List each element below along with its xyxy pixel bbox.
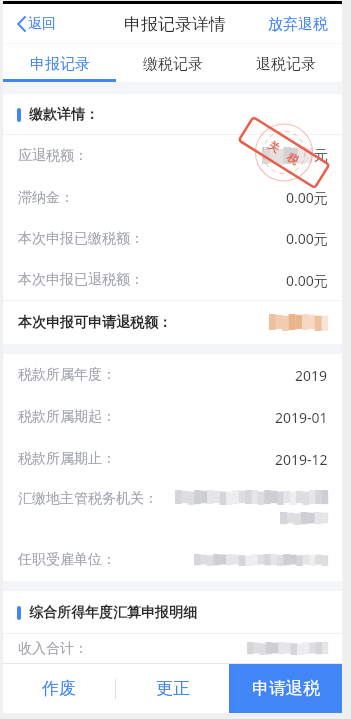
button[interactable]: 作废 (3, 664, 115, 713)
button[interactable]: 放弃退税 (268, 15, 328, 34)
button[interactable]: 汇缴地主管税务机关： (3, 480, 342, 539)
staticText: 作废 (42, 678, 76, 699)
staticText: 汇缴地主管税务机关： (18, 490, 158, 508)
button[interactable]: 收入合计： (3, 634, 342, 663)
button[interactable]: 税款所属期止： (3, 438, 342, 480)
staticText: 申报记录 (30, 55, 90, 74)
staticText: 元 (314, 147, 328, 165)
staticText: 退税记录 (256, 55, 316, 74)
button[interactable]: 本次申报已缴税额： (3, 218, 342, 259)
button[interactable]: 缴税记录 (116, 44, 229, 82)
staticText: 本次申报可申请退税额： (18, 314, 172, 332)
button[interactable]: 税款所属期起： (3, 396, 342, 438)
button[interactable]: 应退税额： (3, 135, 342, 177)
staticText: 2019-12 (275, 450, 328, 469)
staticText: 收入合计： (18, 640, 88, 658)
button[interactable]: 滞纳金： (3, 177, 342, 218)
staticText: 0.00元 (286, 229, 328, 248)
staticText: 任职受雇单位： (18, 551, 116, 569)
staticText: 综合所得年度汇算申报明细 (29, 604, 197, 622)
button[interactable]: 更正 (116, 664, 229, 713)
staticText: 申请退税 (252, 678, 320, 699)
staticText: 2019 (295, 366, 328, 385)
staticText: 0.00元 (286, 271, 328, 290)
staticText: 放弃退税 (268, 15, 328, 34)
staticText: 2019-01 (275, 408, 328, 427)
staticText: 缴款详情： (29, 106, 99, 124)
button[interactable]: 本次申报已退税额： (3, 259, 342, 301)
staticText: 滞纳金： (18, 189, 74, 207)
staticText: 应退税额： (18, 147, 88, 165)
button[interactable]: 申报记录 (3, 44, 116, 82)
staticText: 税款所属年度： (18, 366, 116, 384)
staticText: 缴税记录 (143, 55, 203, 74)
staticText: 税款所属期止： (18, 450, 116, 468)
button[interactable]: 本次申报可申请退税额： (3, 301, 342, 344)
staticText: 0.00元 (286, 188, 328, 207)
staticText: 本次申报已缴税额： (18, 230, 144, 248)
button[interactable]: 退税记录 (229, 44, 342, 82)
staticText: 税款所属期起： (18, 408, 116, 426)
staticText: 更正 (156, 678, 190, 699)
button[interactable]: 返回 (17, 15, 56, 33)
button[interactable]: 税款所属年度： (3, 354, 342, 396)
staticText: 返回 (28, 15, 56, 33)
button[interactable]: 申请退税 (229, 664, 342, 713)
staticText: 申报记录详情 (124, 14, 226, 35)
staticText: 本次申报已退税额： (18, 271, 144, 289)
button[interactable]: 任职受雇单位： (3, 539, 342, 581)
